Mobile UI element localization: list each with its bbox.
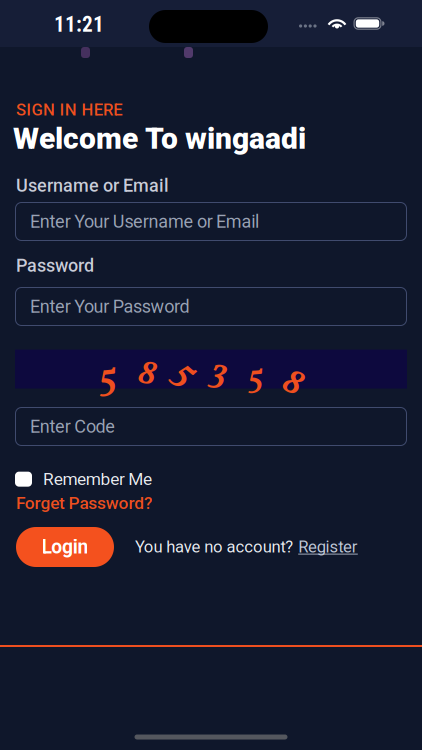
staticText: Welcome To wingaadi	[13, 121, 306, 156]
staticText: Enter Code	[30, 416, 115, 437]
staticText: 11:21	[54, 12, 104, 37]
staticText: 3	[210, 349, 228, 399]
staticText: SIGN IN HERE	[16, 100, 122, 119]
staticText: 5	[176, 350, 193, 400]
staticText: Forget Password?	[16, 493, 152, 513]
staticText: Username or Email	[16, 175, 169, 196]
button[interactable]: Enter Your Password	[15, 287, 407, 326]
staticText: Enter Your Password	[30, 296, 190, 317]
staticText: Enter Your Username or Email	[30, 211, 259, 232]
staticText: Register	[298, 537, 358, 556]
button[interactable]: Enter Code	[15, 407, 407, 446]
staticText: 8	[138, 351, 157, 399]
button[interactable]: Remember Me	[15, 469, 152, 489]
button[interactable]: Register	[298, 537, 358, 556]
button[interactable]: Forget Password?	[16, 493, 152, 513]
button[interactable]: Login	[16, 527, 114, 567]
staticText: Password	[16, 255, 94, 276]
staticText: Remember Me	[43, 469, 152, 489]
staticText: You have no account?	[135, 537, 293, 556]
staticText: Login	[42, 536, 88, 558]
button[interactable]: Enter Your Username or Email	[15, 202, 407, 241]
staticText: 8	[283, 359, 302, 409]
staticText: 5	[248, 356, 264, 402]
staticText: 5	[99, 353, 117, 406]
